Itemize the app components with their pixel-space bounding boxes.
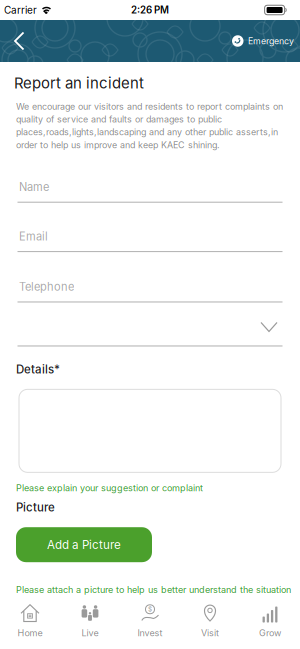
staticText: Email: [19, 230, 48, 243]
staticText: Please attach a picture to help us bette…: [16, 584, 291, 595]
staticText: 2:26 PM: [131, 4, 169, 16]
staticText: Live: [81, 627, 98, 638]
button[interactable]: Select category: [16, 321, 284, 332]
staticText: Emergency: [248, 36, 294, 46]
button[interactable]: $: [120, 602, 180, 646]
button[interactable]: Add a Picture: [16, 527, 152, 562]
staticText: Telephone: [19, 280, 74, 293]
staticText: Details*: [16, 362, 60, 376]
staticText: Please explain your suggestion or compla…: [16, 482, 203, 493]
staticText: Home: [17, 627, 42, 638]
button[interactable]: Grow: [240, 602, 300, 646]
staticText: Add a Picture: [47, 538, 121, 552]
button[interactable]: Visit: [180, 602, 240, 646]
button[interactable]: Back: [0, 20, 24, 62]
staticText: Invest: [137, 627, 162, 638]
staticText: Picture: [16, 500, 55, 514]
staticText: Grow: [259, 627, 281, 638]
staticText: Visit: [201, 627, 219, 638]
button[interactable]: Live: [60, 602, 120, 646]
button[interactable]: Emergency: [232, 20, 300, 62]
staticText: Name: [19, 180, 49, 194]
staticText: Report an incident: [14, 74, 144, 92]
staticText: Carrier: [4, 4, 37, 16]
staticText: We encourage our visitors and residents …: [16, 101, 283, 150]
button[interactable]: Home: [0, 602, 60, 646]
staticText: $: [148, 605, 152, 613]
